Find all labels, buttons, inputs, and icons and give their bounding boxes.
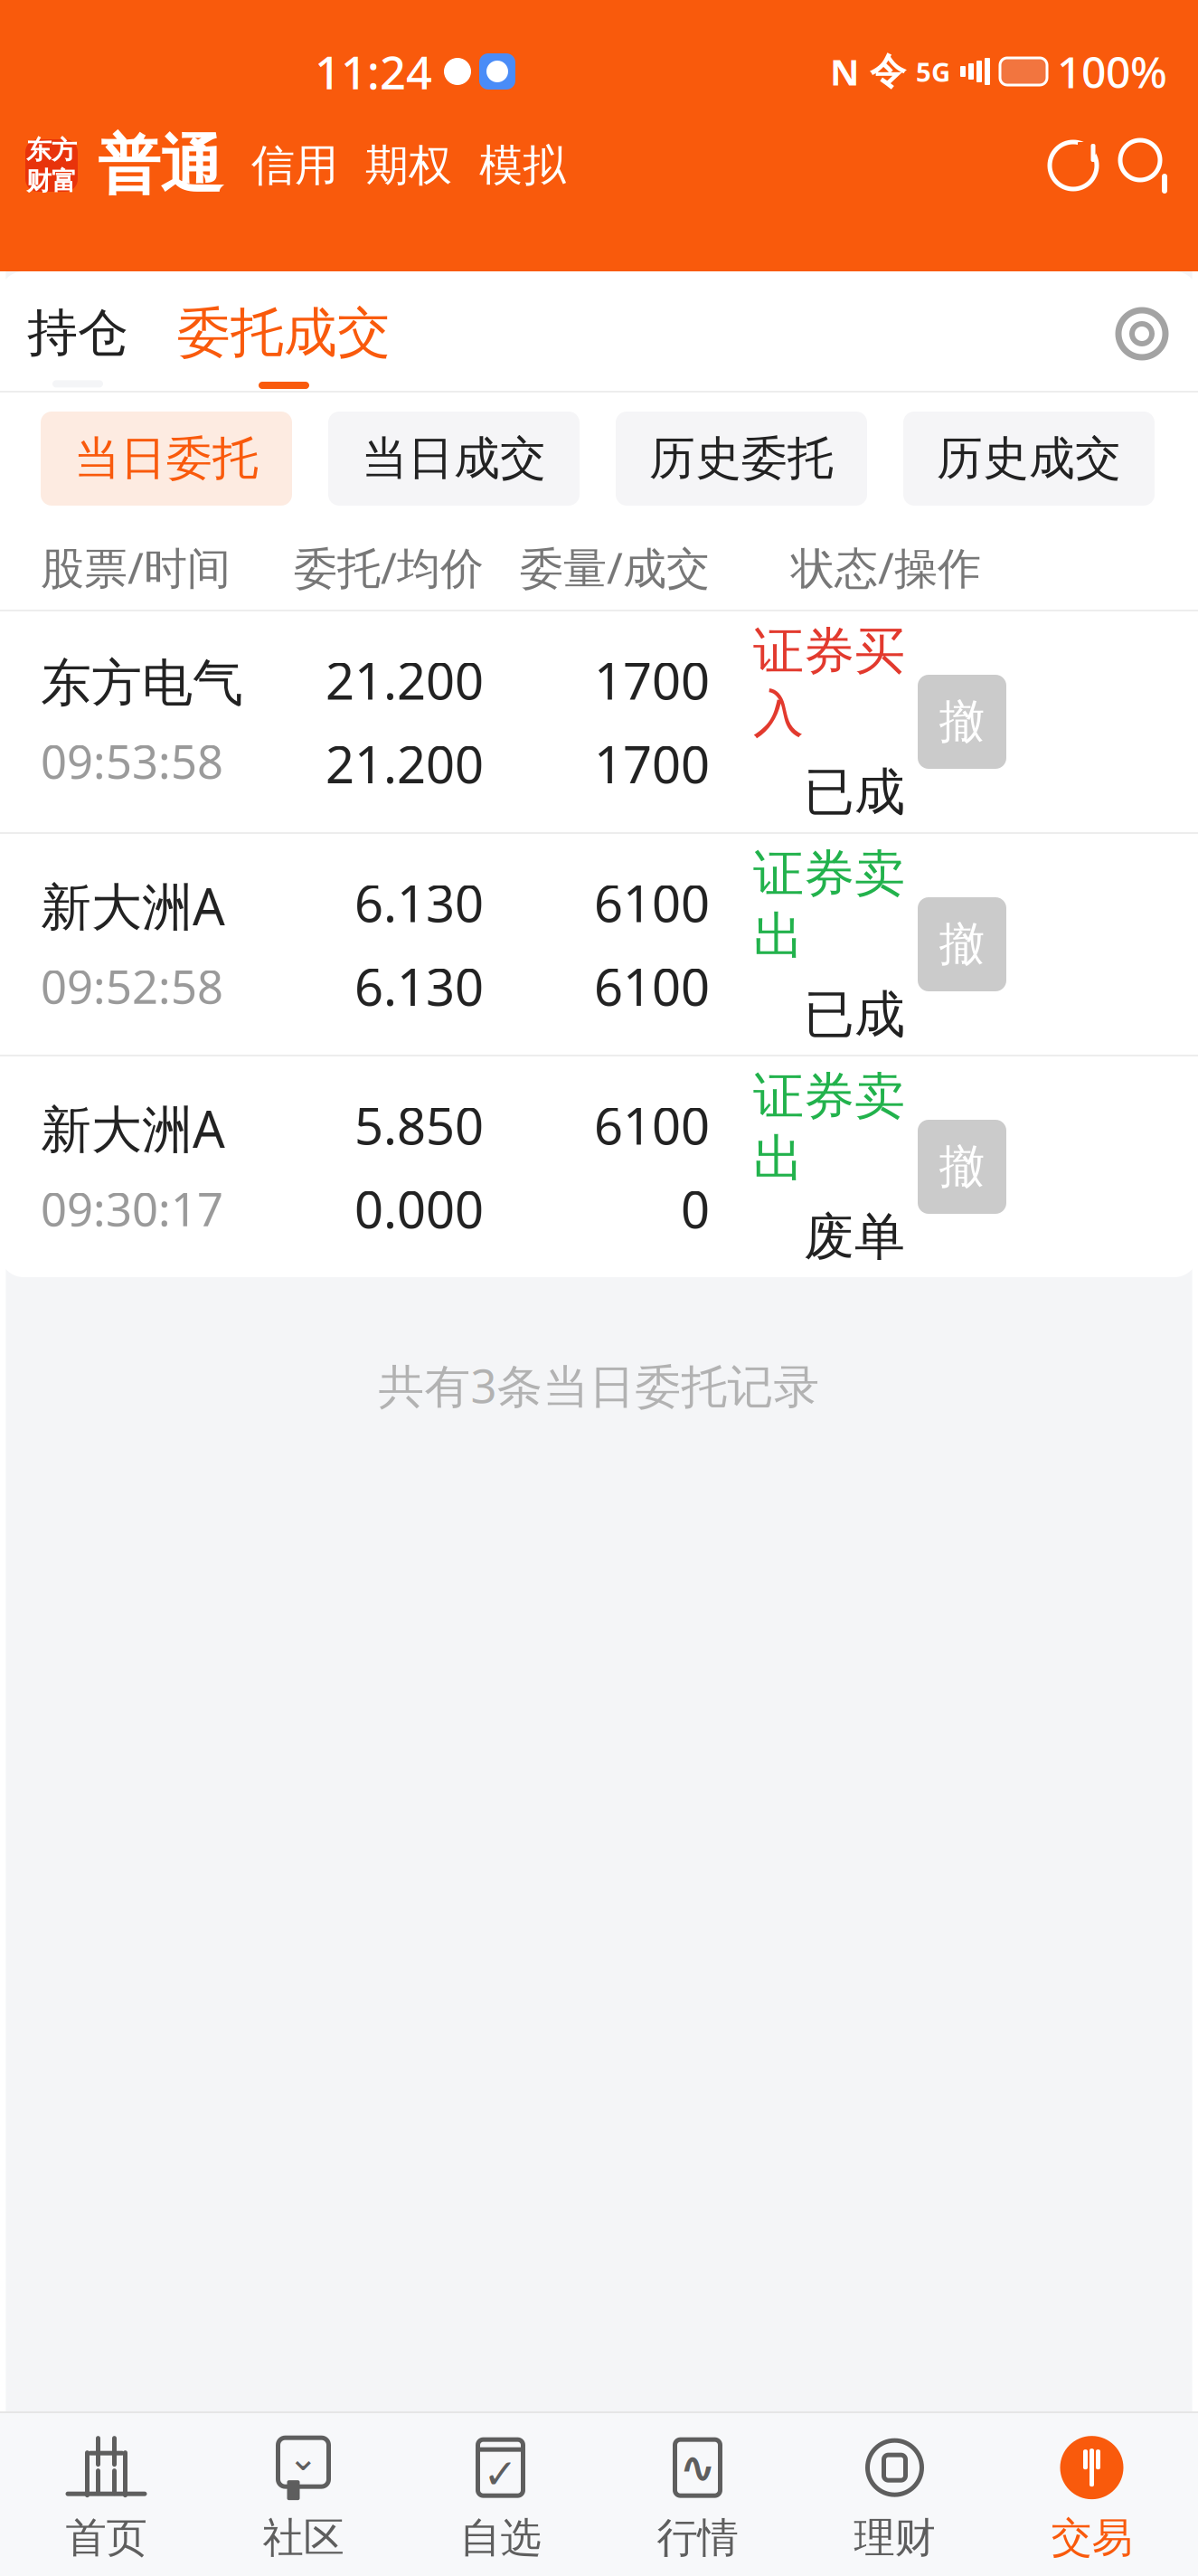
button[interactable]: 持仓 [27,302,128,387]
staticText: 当日成交 [362,430,546,487]
staticText: 6.130 [354,869,484,936]
button[interactable]: ⌄ [205,2422,402,2576]
staticText: 持仓 [27,302,128,364]
staticText: 历史成交 [937,430,1121,487]
staticText: 东方 [26,134,77,166]
staticText: 普通 [98,127,222,204]
staticText: 模拟 [479,139,566,192]
staticText: 委托/均价 [294,538,484,596]
staticText: 状态/操作 [791,538,981,596]
button[interactable]: 当日委托 [41,412,292,506]
button[interactable]: 东方财富 [25,139,78,192]
button[interactable]: 信用 [222,139,338,192]
staticText: 委量/成交 [520,538,710,596]
button[interactable]: 当日成交 [328,412,580,506]
staticText: 已成 [804,984,905,1046]
staticText: 信用 [251,139,338,192]
staticText: 期权 [365,139,452,192]
staticText: ✓ [483,2451,518,2497]
button[interactable]: 撤单 [918,1120,1006,1214]
staticText: 撤 [939,916,985,972]
staticText: 证券卖出 [753,1065,905,1190]
button[interactable]: 期权 [338,139,452,192]
button[interactable]: ✓ [402,2422,599,2576]
staticText: 理财 [854,2513,935,2563]
button[interactable]: 历史委托 [616,412,867,506]
staticText: 废单 [804,1206,905,1268]
button[interactable]: 历史成交 [903,412,1155,506]
button[interactable]: 交易 [993,2422,1190,2576]
staticText: 09:30:17 [41,1178,223,1239]
staticText: 令 [870,49,906,94]
staticText: 股票/时间 [41,538,231,596]
staticText: 撤 [939,694,985,750]
button[interactable]: 搜索 [1117,137,1174,194]
staticText: 证券卖出 [753,843,905,967]
staticText: 委托成交 [177,300,391,366]
staticText: 交易 [1051,2513,1132,2563]
staticText: 100% [1057,43,1167,100]
staticText: 共有3条当日委托记录 [378,1355,820,1416]
staticText: ⌄ [288,2437,319,2478]
staticText: 撤 [939,1139,985,1195]
staticText: 5G [916,54,950,89]
staticText: 09:52:58 [41,956,223,1016]
staticText: 21.200 [325,730,484,797]
staticText: 11:24 [315,41,432,102]
staticText: 财富 [26,166,77,197]
staticText: ∿ [679,2443,716,2492]
staticText: 已成 [804,761,905,823]
staticText: 0 [681,1175,710,1242]
staticText: 当日委托 [74,430,259,487]
staticText: 新大洲A [41,1095,225,1162]
button[interactable]: 刷新 [1044,137,1102,194]
staticText: 09:53:58 [41,731,223,791]
staticText: 自选 [460,2513,541,2563]
button[interactable]: 东方电气 [0,611,1198,832]
button[interactable]: ∿ [599,2422,796,2576]
staticText: 社区 [263,2513,344,2563]
staticText: 证券买入 [753,620,905,745]
staticText: 1700 [594,646,710,714]
button[interactable]: 普通 [78,127,222,204]
staticText: N [830,47,860,95]
staticText: 21.200 [325,646,484,714]
button[interactable]: 模拟 [452,139,566,192]
button[interactable]: 撤单 [918,675,1006,769]
staticText: 6100 [594,1091,710,1159]
staticText: 5.850 [354,1091,484,1159]
staticText: 6.130 [354,952,484,1020]
button[interactable]: 理财 [796,2422,993,2576]
staticText: 0.000 [354,1175,484,1242]
staticText: 历史委托 [649,430,834,487]
staticText: 东方电气 [41,652,243,714]
staticText: 6100 [594,952,710,1020]
staticText: 首页 [66,2513,147,2563]
staticText: 1700 [594,730,710,797]
button[interactable]: 新大洲A [0,1056,1198,1277]
button[interactable]: 委托成交 [128,300,391,389]
button[interactable]: 撤单 [918,897,1006,991]
button[interactable]: 新大洲A [0,834,1198,1055]
staticText: 新大洲A [41,872,225,939]
button[interactable]: 首页 [8,2422,205,2576]
staticText: 6100 [594,869,710,936]
button[interactable]: 设置 [1113,305,1171,363]
staticText: 行情 [657,2513,738,2563]
